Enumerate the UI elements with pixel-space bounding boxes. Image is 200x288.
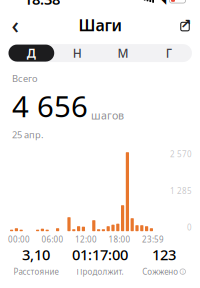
staticText: 123 [152, 245, 176, 264]
staticText: 23:59 [142, 234, 164, 245]
staticText: Д [27, 45, 36, 61]
staticText: Г [166, 45, 172, 61]
staticText: 18:38 [24, 0, 60, 9]
staticText: i [182, 268, 183, 275]
staticText: 00:00 [8, 234, 30, 245]
button[interactable]: М [100, 45, 146, 62]
staticText: ↗ [180, 16, 191, 31]
staticText: Шаги [78, 14, 121, 36]
staticText: ◥ [157, 0, 166, 6]
button[interactable]: Share [170, 12, 200, 38]
staticText: 4 656 [12, 86, 88, 125]
staticText: Всего [12, 72, 38, 84]
staticText: М [117, 45, 128, 61]
staticText: шагов [91, 108, 124, 122]
staticText: 3,10 [22, 245, 50, 264]
staticText: 06:00 [41, 234, 63, 245]
staticText: 0 [187, 222, 192, 233]
staticText: Н [73, 45, 82, 61]
staticText: Сожжено [142, 266, 178, 277]
staticText: 1 285 [170, 185, 192, 196]
button[interactable]: Н [54, 45, 100, 62]
staticText: 18:00 [108, 234, 130, 245]
button[interactable]: Г [146, 45, 192, 62]
button[interactable]: Д [8, 45, 54, 62]
staticText: 25 апр. [12, 128, 44, 141]
staticText: 2 570 [170, 149, 192, 159]
staticText: ‹ [11, 10, 18, 40]
staticText: Расстояние [13, 266, 58, 277]
button[interactable]: Back [0, 12, 30, 38]
staticText: 12:00 [75, 234, 97, 245]
staticText: Продолжит. [76, 266, 123, 277]
staticText: 01:17:00 [72, 245, 128, 264]
